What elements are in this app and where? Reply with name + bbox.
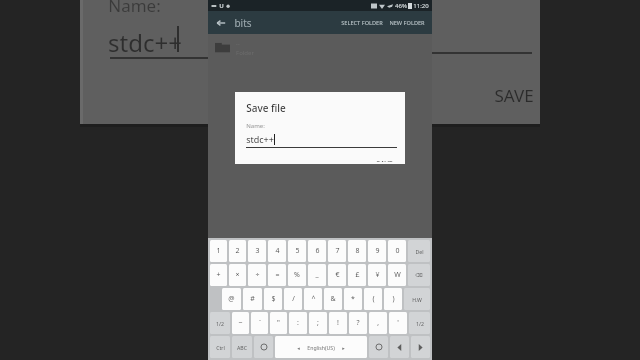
staticText: ^	[311, 294, 316, 304]
button[interactable]: 1/2	[210, 312, 230, 334]
staticText: SAVE	[494, 84, 534, 107]
button[interactable]: 9	[368, 240, 386, 262]
staticText: %	[294, 270, 300, 280]
button[interactable]: ‚	[369, 312, 387, 334]
button[interactable]: €	[328, 264, 346, 286]
button[interactable]: ;	[309, 312, 327, 334]
button[interactable]: 5	[288, 240, 306, 262]
button[interactable]: 3	[248, 240, 266, 262]
staticText: `	[259, 318, 261, 328]
staticText: 1/2	[416, 320, 424, 327]
button[interactable]: 7	[328, 240, 346, 262]
staticText: @	[228, 294, 235, 304]
button[interactable]: ⌫	[408, 264, 430, 286]
button[interactable]: ABC	[232, 336, 252, 358]
staticText: bits	[234, 16, 252, 30]
staticText: ⌫	[415, 272, 423, 278]
button[interactable]: ?	[349, 312, 367, 334]
button[interactable]: (	[364, 288, 382, 310]
staticText: =	[275, 270, 280, 280]
staticText: English(US)	[307, 344, 335, 351]
button[interactable]: 2	[229, 240, 246, 262]
button[interactable]: :	[289, 312, 307, 334]
staticText: 7	[335, 246, 340, 256]
staticText: ÷	[255, 270, 260, 280]
button[interactable]: ¥	[368, 264, 386, 286]
button[interactable]: ◂	[275, 336, 367, 358]
button[interactable]: 4	[268, 240, 286, 262]
button[interactable]: Right	[411, 336, 430, 358]
staticText: Save file	[246, 101, 286, 115]
button[interactable]: ..	[208, 34, 432, 60]
staticText: ◂	[297, 345, 300, 351]
button[interactable]: %	[288, 264, 306, 286]
staticText: H.W	[412, 296, 422, 303]
button[interactable]: /	[284, 288, 302, 310]
staticText: 8	[355, 246, 360, 256]
button[interactable]: !	[329, 312, 347, 334]
button[interactable]: `	[251, 312, 268, 334]
button[interactable]: ^	[304, 288, 322, 310]
button[interactable]: 1/2	[409, 312, 430, 334]
staticText: W	[394, 270, 401, 280]
staticText: 46%	[395, 2, 407, 10]
button[interactable]: 1	[210, 240, 227, 262]
button[interactable]: H.W	[404, 288, 430, 310]
button[interactable]: 6	[308, 240, 326, 262]
staticText: !	[337, 318, 339, 328]
staticText: stdc++	[108, 26, 182, 59]
staticText: 1/2	[216, 320, 224, 327]
staticText: '	[397, 318, 399, 328]
staticText: £	[355, 270, 360, 280]
staticText: NEW FOLDER	[389, 19, 425, 27]
button[interactable]: Del	[408, 240, 430, 262]
staticText: 2	[235, 246, 240, 256]
button[interactable]: _	[308, 264, 326, 286]
staticText: ¥	[375, 270, 380, 280]
staticText: Name:	[246, 122, 265, 130]
staticText: :	[297, 318, 299, 328]
staticText: 11:20	[413, 2, 429, 10]
button[interactable]: SELECT FOLDER	[338, 15, 386, 31]
staticText: Name:	[108, 0, 161, 17]
staticText: "	[277, 318, 280, 328]
button[interactable]: £	[348, 264, 366, 286]
button[interactable]: '	[389, 312, 407, 334]
button[interactable]: 0	[388, 240, 406, 262]
button[interactable]: +	[210, 264, 227, 286]
button[interactable]: NEW FOLDER	[386, 15, 428, 31]
staticText: /	[292, 294, 295, 304]
staticText: *	[351, 294, 355, 304]
button[interactable]: )	[384, 288, 402, 310]
staticText: SAVE	[376, 159, 393, 162]
staticText: $	[271, 294, 276, 304]
button[interactable]: 8	[348, 240, 366, 262]
staticText: ×	[235, 270, 240, 280]
staticText: _	[315, 270, 319, 280]
staticText: 9	[375, 246, 380, 256]
button[interactable]: Emoji	[254, 336, 273, 358]
button[interactable]: =	[268, 264, 286, 286]
button[interactable]: #	[243, 288, 262, 310]
button[interactable]: ×	[229, 264, 246, 286]
button[interactable]: Left	[390, 336, 409, 358]
button[interactable]: Back	[214, 16, 228, 30]
button[interactable]: $	[264, 288, 282, 310]
staticText: Ctrl	[216, 344, 225, 351]
button[interactable]: &	[324, 288, 342, 310]
button[interactable]: *	[344, 288, 362, 310]
button[interactable]: "	[270, 312, 287, 334]
button[interactable]: @	[222, 288, 241, 310]
button[interactable]: SAVE	[372, 157, 397, 164]
staticText: Folder	[236, 49, 254, 57]
staticText: ;	[317, 318, 319, 328]
staticText: stdc++	[246, 133, 274, 145]
staticText: +	[216, 270, 221, 280]
button[interactable]: Settings	[369, 336, 388, 358]
button[interactable]: Ctrl	[210, 336, 230, 358]
button[interactable]: ÷	[248, 264, 266, 286]
button[interactable]: W	[388, 264, 406, 286]
staticText: ‚	[377, 318, 379, 328]
staticText: &	[330, 294, 336, 304]
button[interactable]: ~	[232, 312, 249, 334]
